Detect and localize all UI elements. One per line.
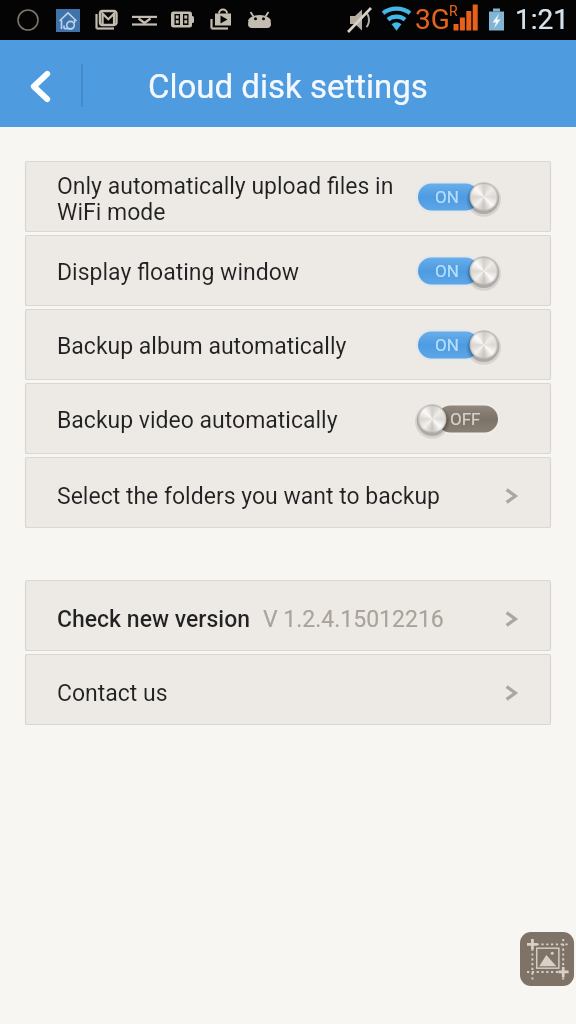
button[interactable]: Backup album automatically	[25, 309, 551, 380]
button[interactable]: Switch on	[418, 328, 498, 362]
staticText: Check new version	[57, 606, 251, 633]
staticText: Backup album automatically	[57, 333, 418, 360]
staticText: ON	[435, 261, 459, 281]
button[interactable]: Back	[0, 40, 81, 127]
button[interactable]: Display floating window	[25, 235, 551, 306]
staticText: ON	[435, 187, 459, 207]
button[interactable]: Backup video automatically	[25, 383, 551, 454]
staticText: Backup video automatically	[57, 407, 418, 434]
staticText: ON	[435, 335, 459, 355]
staticText: Select the folders you want to backup	[57, 483, 441, 510]
button[interactable]: Only automatically upload files in WiFi …	[25, 161, 551, 232]
staticText: Only automatically upload files in WiFi …	[57, 173, 418, 225]
staticText: 1:21	[515, 3, 569, 36]
staticText: OFF	[450, 409, 481, 429]
staticText: Cloud disk settings	[148, 67, 428, 106]
staticText: 3G	[415, 3, 450, 36]
button[interactable]: Switch on	[418, 180, 498, 214]
button[interactable]: Select the folders you want to backup	[25, 457, 551, 528]
button[interactable]: Check new version	[25, 580, 551, 651]
button[interactable]: Switch on	[418, 254, 498, 288]
button[interactable]: Screenshot	[520, 932, 574, 986]
staticText: Contact us	[57, 680, 168, 707]
button[interactable]: Contact us	[25, 654, 551, 725]
staticText: V 1.2.4.15012216	[263, 606, 444, 633]
staticText: Display floating window	[57, 259, 418, 286]
button[interactable]: Switch off	[418, 402, 498, 436]
staticText: R	[449, 3, 458, 19]
